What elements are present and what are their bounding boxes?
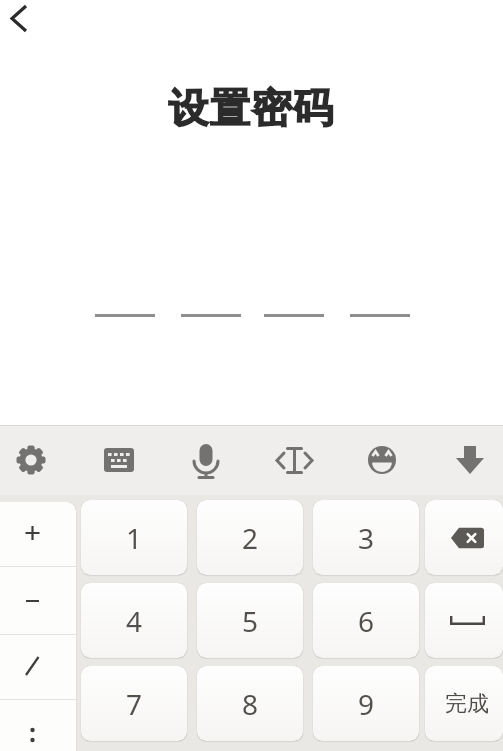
button[interactable]: 1 <box>81 500 187 575</box>
button[interactable]: 8 <box>197 666 303 741</box>
button[interactable] <box>357 435 407 485</box>
button[interactable]: 3 <box>313 500 419 575</box>
button[interactable] <box>425 500 503 575</box>
staticText: 设置密码 <box>0 83 503 133</box>
button[interactable] <box>94 435 144 485</box>
button[interactable]: 2 <box>197 500 303 575</box>
button[interactable] <box>445 435 495 485</box>
staticText: 9 <box>358 685 375 723</box>
button[interactable]: 7 <box>81 666 187 741</box>
staticText: 6 <box>358 602 375 640</box>
staticText: 7 <box>126 685 143 723</box>
staticText: 3 <box>358 519 375 557</box>
staticText: 2 <box>242 519 259 557</box>
button[interactable] <box>425 583 503 658</box>
button[interactable] <box>0 689 76 751</box>
button[interactable]: 5 <box>197 583 303 658</box>
button[interactable] <box>6 435 56 485</box>
staticText: 完成 <box>445 690 489 718</box>
button[interactable] <box>0 565 76 627</box>
staticText: 8 <box>242 685 259 723</box>
button[interactable] <box>2 0 42 40</box>
button[interactable] <box>181 435 231 485</box>
button[interactable]: 6 <box>313 583 419 658</box>
button[interactable]: 完成 <box>425 666 503 741</box>
button[interactable] <box>0 627 76 689</box>
button[interactable] <box>269 435 319 485</box>
button[interactable]: 4 <box>81 583 187 658</box>
staticText: 4 <box>126 602 143 640</box>
staticText: 1 <box>126 519 143 557</box>
button[interactable]: 9 <box>313 666 419 741</box>
button[interactable] <box>0 502 76 565</box>
staticText: 5 <box>242 602 259 640</box>
